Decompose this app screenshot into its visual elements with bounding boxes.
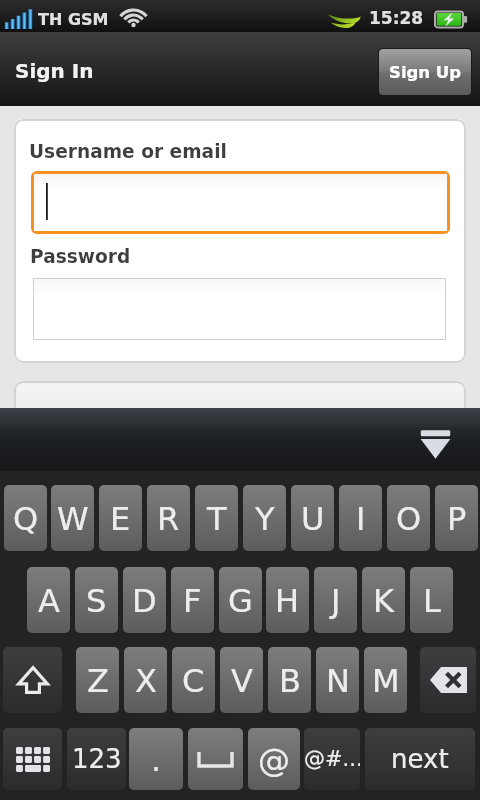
staticText: F	[183, 582, 202, 619]
staticText: V	[231, 662, 253, 699]
staticText: 123	[72, 744, 122, 774]
staticText: @	[258, 741, 290, 778]
staticText: TH GSM	[38, 10, 109, 29]
button[interactable]: D	[123, 567, 166, 633]
staticText: P	[447, 500, 467, 537]
staticText: .	[151, 741, 162, 778]
button[interactable]: F	[171, 567, 214, 633]
staticText: Sign In	[15, 59, 94, 82]
staticText: M	[372, 662, 400, 699]
button[interactable]	[34, 174, 447, 231]
button[interactable]: .	[129, 728, 183, 790]
button[interactable]	[33, 278, 446, 340]
button[interactable]: P	[435, 485, 478, 551]
button[interactable]: I	[339, 485, 382, 551]
button[interactable]: V	[220, 647, 263, 713]
button[interactable]: @	[248, 728, 300, 790]
staticText: G	[228, 582, 253, 619]
staticText: J	[331, 582, 341, 619]
button[interactable]: @#...	[304, 728, 360, 790]
button[interactable]: O	[387, 485, 430, 551]
staticText: L	[423, 582, 441, 619]
staticText: Sign Up	[389, 63, 462, 82]
button[interactable]: Sign In	[14, 381, 466, 451]
button[interactable]: Delete	[420, 647, 476, 713]
button[interactable]: Z	[76, 647, 119, 713]
button[interactable]: 123	[67, 728, 126, 790]
staticText: U	[301, 500, 325, 537]
button[interactable]: T	[195, 485, 238, 551]
staticText: C	[182, 662, 205, 699]
staticText: D	[132, 582, 157, 619]
button[interactable]: Y	[243, 485, 286, 551]
staticText: T	[207, 500, 227, 537]
button[interactable]: Switch keyboard	[3, 728, 62, 790]
button[interactable]: A	[27, 567, 70, 633]
staticText: B	[279, 662, 301, 699]
button[interactable]: Sign Up	[379, 49, 471, 95]
staticText: O	[396, 500, 422, 537]
button[interactable]: Shift	[3, 647, 62, 713]
button[interactable]: U	[291, 485, 334, 551]
button[interactable]: X	[124, 647, 167, 713]
button[interactable]: G	[219, 567, 262, 633]
button[interactable]: C	[172, 647, 215, 713]
staticText: S	[86, 582, 107, 619]
button[interactable]: L	[410, 567, 453, 633]
staticText: Password	[30, 246, 131, 268]
staticText: 15:28	[369, 8, 424, 28]
button[interactable]: E	[99, 485, 142, 551]
button[interactable]: H	[266, 567, 309, 633]
staticText: A	[38, 582, 60, 619]
button[interactable]: Q	[4, 485, 47, 551]
button[interactable]: J	[314, 567, 357, 633]
button[interactable]: K	[362, 567, 405, 633]
button[interactable]: M	[364, 647, 407, 713]
staticText: E	[110, 500, 131, 537]
button[interactable]: W	[51, 485, 94, 551]
button[interactable]: R	[147, 485, 190, 551]
button[interactable]: Hide keyboard	[414, 422, 457, 462]
staticText: Y	[255, 500, 275, 537]
staticText: H	[275, 582, 300, 619]
staticText: Sign In	[204, 406, 277, 428]
staticText: next	[391, 744, 449, 774]
button[interactable]: N	[316, 647, 359, 713]
button[interactable]: Space	[188, 728, 243, 790]
button[interactable]: S	[75, 567, 118, 633]
button[interactable]: B	[268, 647, 311, 713]
staticText: Z	[87, 662, 109, 699]
staticText: I	[356, 500, 366, 537]
staticText: R	[157, 500, 180, 537]
staticText: W	[57, 500, 89, 537]
staticText: N	[326, 662, 350, 699]
staticText: K	[373, 582, 394, 619]
staticText: Username or email	[29, 141, 227, 163]
staticText: Q	[13, 500, 39, 537]
staticText: @#...	[304, 747, 360, 771]
button[interactable]: next	[365, 728, 475, 790]
staticText: X	[135, 662, 157, 699]
